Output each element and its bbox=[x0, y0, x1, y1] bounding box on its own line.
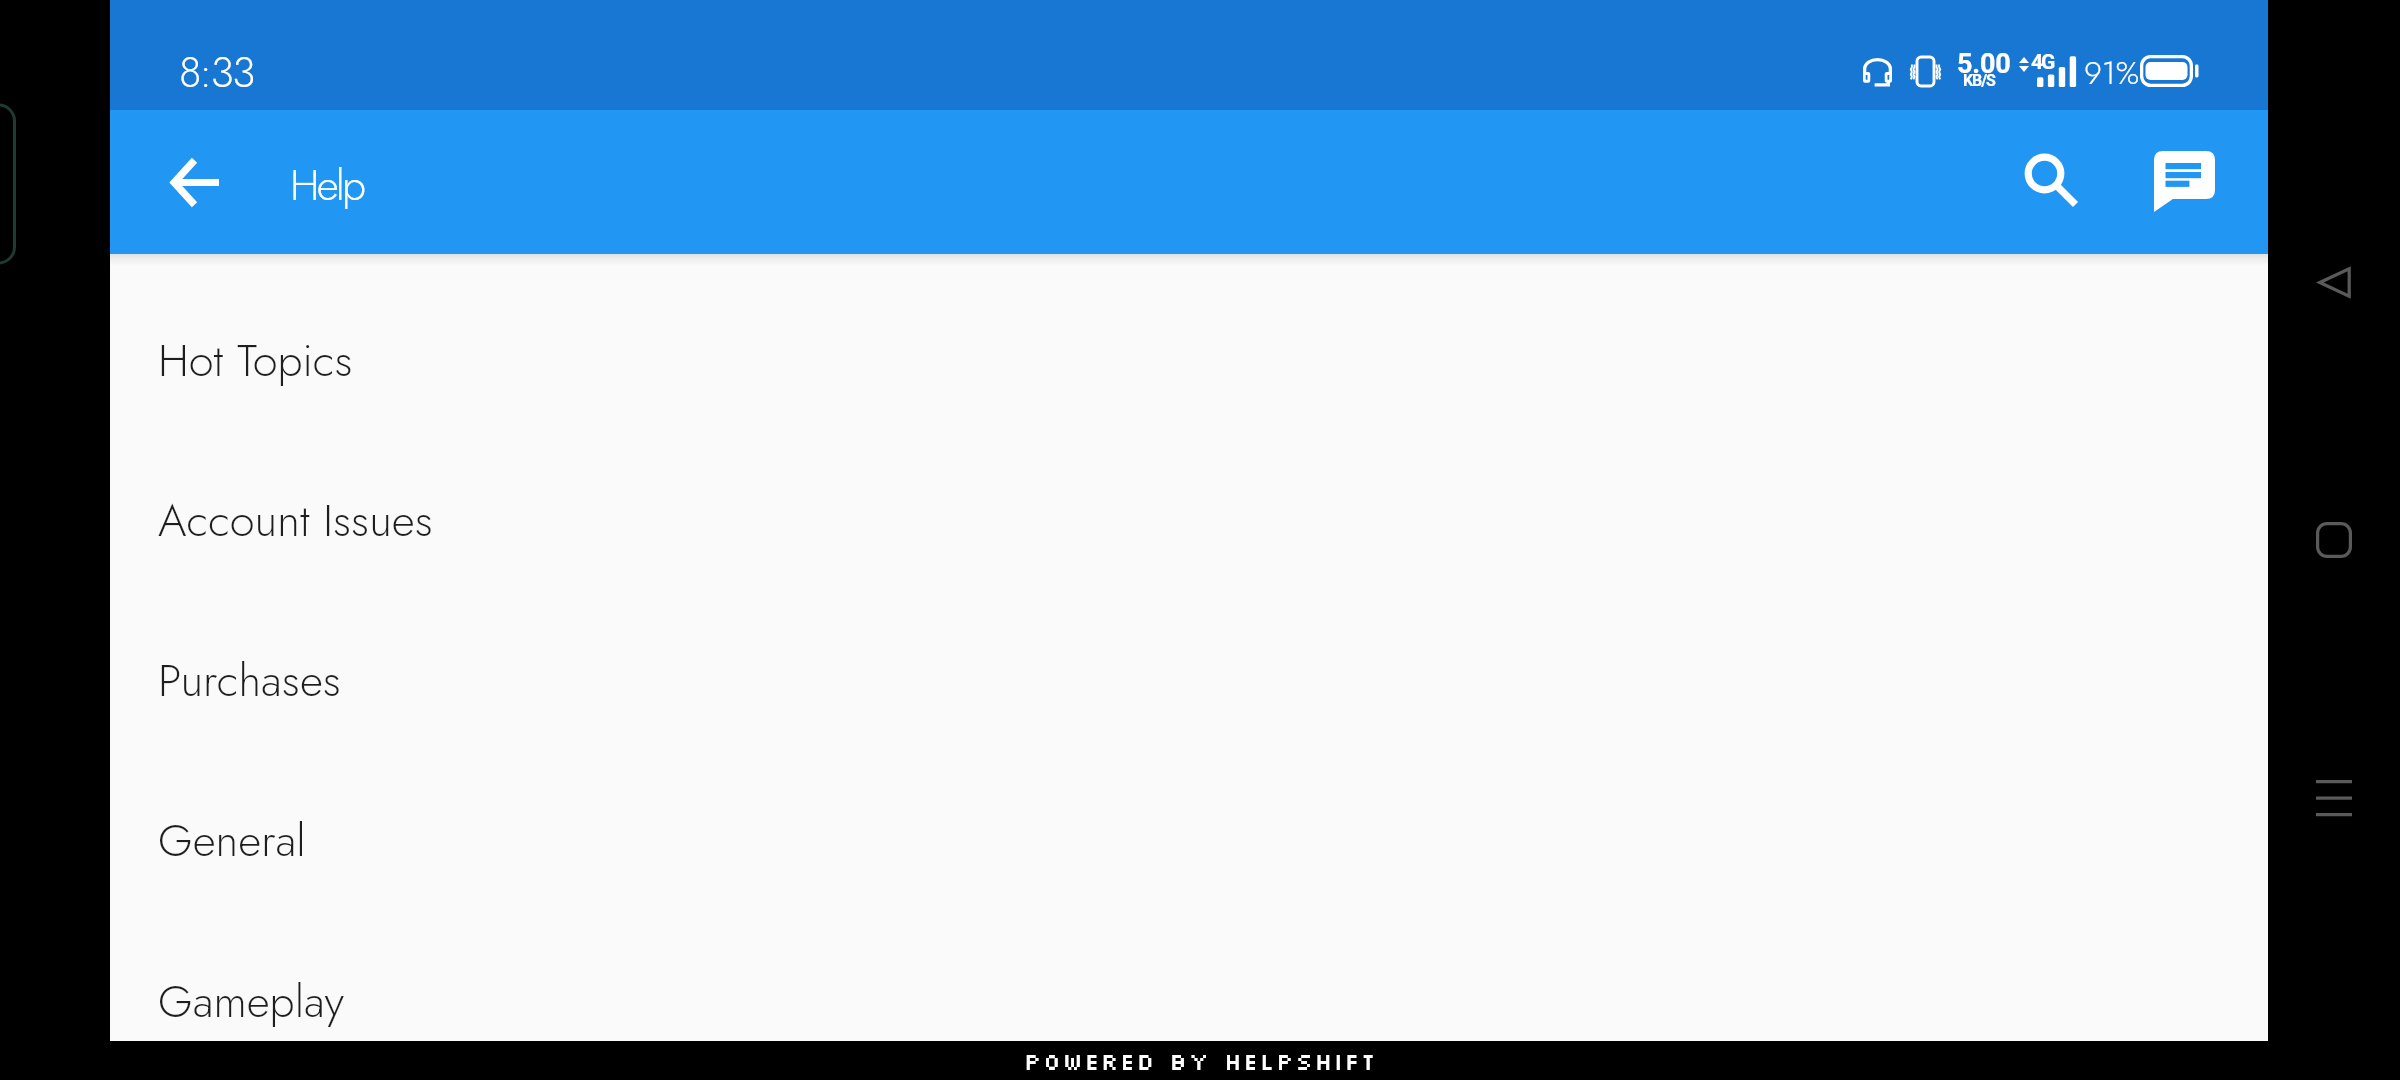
button[interactable]: Back bbox=[2268, 227, 2400, 337]
staticText: POWERED BY HELPSHIFT bbox=[1024, 1046, 1378, 1075]
button[interactable]: Navigate up bbox=[148, 136, 240, 228]
staticText: Gameplay bbox=[158, 969, 344, 1034]
button[interactable]: Account Issues bbox=[110, 440, 2268, 600]
staticText: 91% bbox=[2084, 50, 2140, 96]
staticText: Hot Topics bbox=[158, 328, 353, 393]
button[interactable]: General bbox=[110, 760, 2268, 920]
button[interactable]: Purchases bbox=[110, 600, 2268, 760]
button[interactable]: Conversations bbox=[2129, 126, 2239, 236]
button[interactable]: Gameplay bbox=[110, 921, 2268, 1080]
staticText: 8:33 bbox=[179, 42, 254, 103]
button[interactable]: Recent apps bbox=[2268, 743, 2400, 853]
button[interactable]: Hot Topics bbox=[110, 280, 2268, 440]
button[interactable]: Home bbox=[2268, 485, 2400, 595]
staticText: Account Issues bbox=[158, 488, 433, 553]
staticText: KB/S bbox=[1963, 71, 1995, 90]
staticText: 4G bbox=[2031, 50, 2054, 75]
staticText: 5.00 bbox=[1957, 48, 2011, 80]
staticText: General bbox=[158, 808, 306, 873]
staticText: Help bbox=[290, 154, 364, 216]
button[interactable]: Search bbox=[1996, 125, 2106, 235]
staticText: Purchases bbox=[158, 648, 341, 713]
